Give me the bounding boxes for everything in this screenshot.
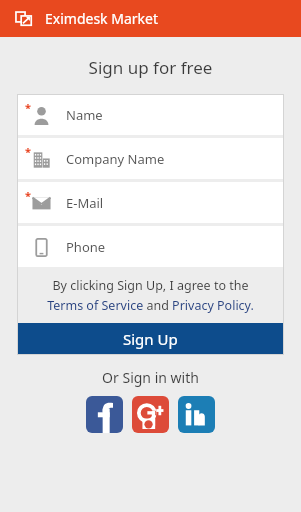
button[interactable]: Phone [17, 226, 284, 267]
button[interactable]: By clicking Sign Up, I agree to the [17, 277, 284, 314]
button[interactable]: Sign in with Google Plus [132, 396, 169, 433]
staticText: * [25, 100, 31, 115]
staticText: * [25, 188, 31, 203]
button[interactable]: Sign Up [17, 323, 284, 355]
button[interactable]: * [17, 138, 284, 179]
staticText: Terms of Service and Privacy Policy. [47, 297, 254, 314]
button[interactable]: Sign in with Facebook [86, 396, 123, 433]
staticText: Name [66, 106, 103, 124]
button[interactable]: Eximdesk Market logo [15, 9, 34, 28]
staticText: Eximdesk Market [45, 9, 158, 28]
button[interactable]: * [17, 94, 284, 135]
staticText: * [25, 144, 31, 159]
staticText: E-Mail [66, 194, 104, 212]
staticText: Sign up for free [0, 56, 301, 79]
staticText: Company Name [66, 150, 165, 168]
staticText: Sign Up [123, 329, 178, 349]
staticText: Phone [66, 238, 106, 256]
button[interactable]: Sign in with LinkedIn [178, 396, 215, 433]
button[interactable]: * [17, 182, 284, 223]
staticText: Or Sign in with [0, 368, 301, 387]
staticText: By clicking Sign Up, I agree to the [52, 277, 249, 294]
